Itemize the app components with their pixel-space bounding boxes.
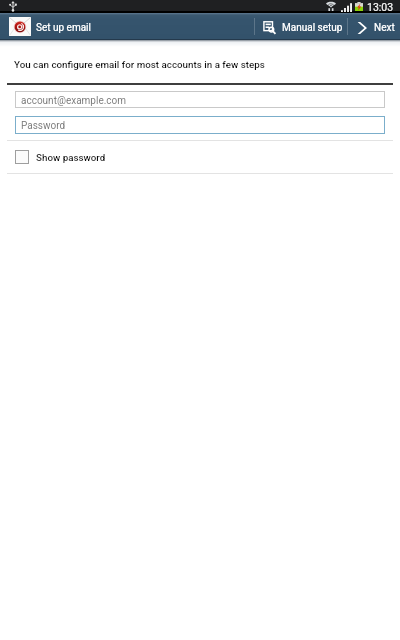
staticText: Password — [21, 120, 66, 132]
button[interactable]: Next — [348, 12, 400, 39]
button[interactable]: Manual setup — [255, 12, 348, 39]
button[interactable]: Password — [15, 116, 385, 134]
staticText: Next — [374, 22, 395, 34]
staticText: account@example.com — [21, 95, 127, 107]
staticText: Show password — [36, 152, 106, 163]
staticText: Set up email — [36, 22, 91, 34]
staticText: 13:03 — [367, 1, 394, 13]
staticText: You can configure email for most account… — [14, 59, 265, 70]
button[interactable]: account@example.com — [15, 91, 385, 108]
staticText: Manual setup — [282, 22, 343, 34]
button[interactable]: Show password — [0, 141, 400, 173]
button[interactable]: Set up email — [0, 12, 105, 39]
